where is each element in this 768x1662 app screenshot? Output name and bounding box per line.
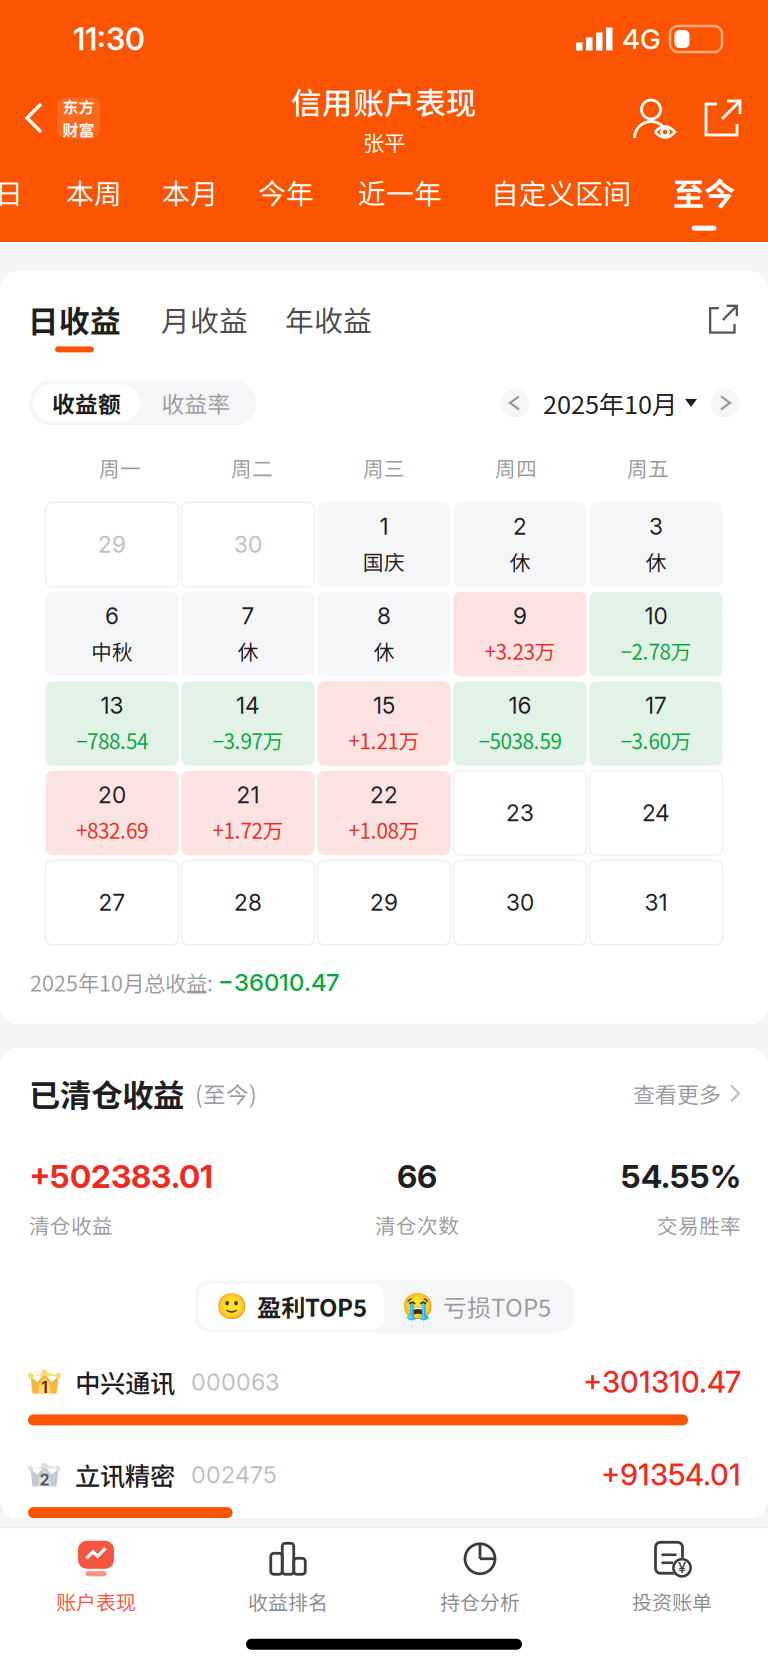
staticText: 28 <box>234 889 262 916</box>
staticText: 20 <box>98 781 126 809</box>
staticText: +502383.01 <box>29 1157 213 1196</box>
button[interactable]: 本周 <box>46 158 142 242</box>
button[interactable]: 😭 <box>384 1284 569 1329</box>
staticText: 30 <box>234 531 262 558</box>
button[interactable]: 🙂 <box>199 1284 384 1329</box>
button[interactable]: 1 <box>0 1333 768 1425</box>
staticText: 收益排名 <box>248 1587 328 1616</box>
button[interactable]: 年收益 <box>248 298 372 351</box>
staticText: 信用账户表现 <box>291 79 477 123</box>
button[interactable]: 返回 <box>0 97 100 138</box>
staticText: 8 <box>377 602 391 630</box>
staticText: 4G <box>622 22 661 56</box>
staticText: −788.54 <box>76 725 148 755</box>
staticText: 亏损TOP5 <box>443 1289 551 1324</box>
staticText: 2025年10月 <box>543 385 677 421</box>
button[interactable]: 近一年 <box>334 158 466 242</box>
staticText: 清仓次数 <box>375 1210 459 1240</box>
button[interactable]: 下一月 <box>711 388 740 417</box>
staticText: 54.55% <box>621 1157 741 1196</box>
staticText: 周五 <box>627 452 669 482</box>
staticText: 查看更多 <box>633 1077 721 1109</box>
staticText: 东方 <box>62 95 94 118</box>
staticText: 13 <box>100 692 123 719</box>
staticText: 6 <box>105 602 119 630</box>
staticText: 29 <box>370 889 398 916</box>
staticText: 😭 <box>402 1291 434 1321</box>
staticText: 24 <box>642 799 670 827</box>
staticText: 3 <box>649 513 663 540</box>
staticText: 🙂 <box>216 1291 248 1321</box>
staticText: 7 <box>241 602 254 630</box>
staticText: 周四 <box>495 452 537 482</box>
button[interactable]: 分享 <box>702 97 744 139</box>
staticText: 15 <box>373 692 395 719</box>
staticText: 中兴通讯 <box>75 1364 175 1400</box>
staticText: 休 <box>373 636 394 666</box>
staticText: 投资账单 <box>632 1587 712 1616</box>
button[interactable]: 本月 <box>142 158 238 242</box>
staticText: 年收益 <box>285 298 372 340</box>
staticText: 收益率 <box>161 386 230 419</box>
staticText: 本周 <box>66 172 122 212</box>
staticText: 30 <box>506 889 534 916</box>
staticText: 月收益 <box>161 298 248 340</box>
staticText: 2 <box>513 513 527 540</box>
staticText: 已清仓收益 <box>29 1071 184 1116</box>
staticText: 交易胜率 <box>657 1210 741 1240</box>
staticText: 23 <box>506 799 534 827</box>
staticText: 周二 <box>231 452 273 482</box>
staticText: 周一 <box>99 452 141 482</box>
button[interactable]: 自定义区间 <box>466 158 656 242</box>
staticText: 14 <box>236 692 260 719</box>
button[interactable]: 至今 <box>656 158 752 242</box>
staticText: 9 <box>513 602 527 630</box>
button[interactable]: 账户信息 <box>632 96 678 140</box>
button[interactable]: 收益额 <box>33 384 140 421</box>
staticText: 2 <box>39 1470 49 1489</box>
staticText: 清仓收益 <box>29 1210 113 1240</box>
button[interactable]: 上一月 <box>500 388 529 417</box>
button[interactable]: 2 <box>0 1425 768 1518</box>
staticText: 1 <box>379 513 388 540</box>
staticText: +832.69 <box>76 815 148 845</box>
staticText: 日收益 <box>28 297 121 341</box>
button[interactable]: 月收益 <box>121 298 248 351</box>
staticText: 至今 <box>673 169 735 215</box>
staticText: 002475 <box>191 1461 277 1489</box>
button[interactable]: 日收益 <box>28 297 121 352</box>
staticText: 立讯精密 <box>75 1456 175 1493</box>
button[interactable]: 日 <box>0 158 46 242</box>
staticText: 27 <box>98 889 125 916</box>
staticText: 1 <box>41 1377 48 1397</box>
staticText: 22 <box>370 781 398 809</box>
staticText: 持仓分析 <box>440 1587 520 1616</box>
staticText: 张平 <box>363 126 405 157</box>
staticText: ¥ <box>678 1559 686 1577</box>
staticText: 本月 <box>162 172 218 212</box>
staticText: 日 <box>0 172 23 212</box>
staticText: −3.60万 <box>620 725 691 755</box>
staticText: 近一年 <box>358 172 442 212</box>
staticText: 31 <box>644 889 667 916</box>
staticText: +91354.01 <box>601 1457 741 1492</box>
staticText: 21 <box>236 781 259 809</box>
staticText: 66 <box>397 1157 437 1196</box>
button[interactable]: 收益率 <box>140 384 252 421</box>
button[interactable]: 账户表现 <box>0 1531 192 1623</box>
staticText: 周三 <box>363 452 405 482</box>
staticText: +1.21万 <box>348 725 419 755</box>
staticText: 中秋 <box>91 636 133 666</box>
button[interactable]: ¥ <box>576 1531 768 1623</box>
staticText: 2025年10月总收益: <box>30 967 218 998</box>
staticText: 账户表现 <box>56 1587 136 1616</box>
button[interactable]: 查看更多 <box>633 1077 741 1109</box>
button[interactable]: 今年 <box>238 158 334 242</box>
staticText: 11:30 <box>73 20 145 57</box>
staticText: −3.97万 <box>212 725 283 755</box>
staticText: 财富 <box>62 118 94 141</box>
button[interactable]: 收益排名 <box>192 1531 384 1623</box>
button[interactable]: 分享 <box>707 303 740 347</box>
staticText: 休 <box>237 636 258 666</box>
button[interactable]: 持仓分析 <box>384 1531 576 1623</box>
